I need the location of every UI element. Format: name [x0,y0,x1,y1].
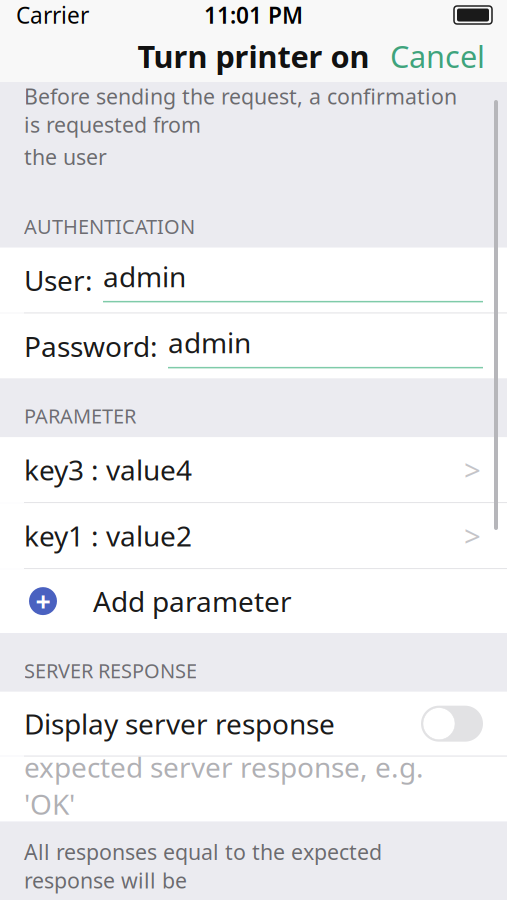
staticText: SERVER RESPONSE [24,657,197,684]
button[interactable]: + [0,569,507,633]
staticText: Before sending the request, a confirmati… [24,82,457,139]
staticText: expected server response, e.g. 'OK' [24,748,424,823]
staticText: the user [24,143,107,171]
staticText: key1 : value2 [24,517,192,554]
staticText: key3 : value4 [24,451,192,488]
button[interactable]: key3 : value4 [0,437,507,502]
staticText: 11:01 PM [204,0,303,30]
button[interactable]: Display server response [0,692,507,756]
button[interactable]: User: [0,247,507,312]
staticText: > [464,516,481,555]
staticText: All responses equal to the expected resp… [24,838,382,894]
staticText: admin [168,324,251,361]
staticText: Carrier [16,0,89,30]
staticText: + [35,583,50,619]
button[interactable]: Password: [0,313,507,378]
staticText: Display server response [24,705,335,742]
staticText: PARAMETER [24,402,136,429]
staticText: Turn printer on [137,36,369,76]
staticText: Cancel [390,36,485,76]
staticText: User: [24,261,93,299]
staticText: Add parameter [93,582,292,620]
staticText: > [464,450,481,489]
staticText: admin [103,258,186,295]
button[interactable]: key1 : value2 [0,503,507,568]
button[interactable]: Cancel [380,32,495,80]
button[interactable]: expected server response, e.g. 'OK' [0,757,507,822]
staticText: AUTHENTICATION [24,213,195,240]
staticText: Password: [24,327,158,365]
